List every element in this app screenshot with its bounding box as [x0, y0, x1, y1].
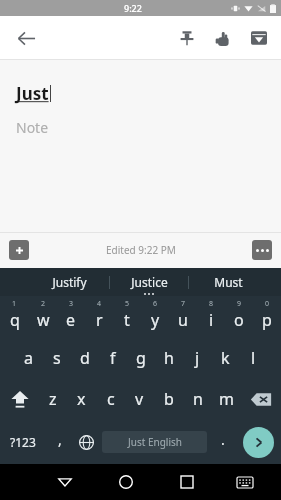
staticText: Just English — [128, 435, 182, 449]
staticText: , — [58, 430, 62, 449]
button[interactable]: Add — [9, 240, 29, 260]
staticText: 2 — [41, 299, 46, 309]
staticText: w — [37, 309, 50, 331]
staticText: g — [136, 347, 146, 369]
button[interactable]: Reminder — [205, 20, 241, 56]
staticText: . — [221, 430, 225, 449]
staticText: ?123 — [10, 434, 36, 450]
button[interactable]: ?123 — [0, 420, 46, 464]
staticText: j — [195, 347, 200, 369]
staticText: 7 — [181, 299, 186, 309]
button[interactable]: 0 — [253, 296, 281, 338]
button[interactable]: k — [211, 338, 239, 378]
staticText: y — [151, 309, 160, 331]
button[interactable]: 4 — [85, 296, 113, 338]
staticText: 6 — [153, 299, 158, 309]
staticText: 9 — [237, 299, 242, 309]
button[interactable]: Enter — [243, 427, 274, 458]
button[interactable]: 7 — [169, 296, 197, 338]
staticText: Justify — [52, 274, 87, 290]
button[interactable]: f — [99, 338, 127, 378]
button[interactable]: Pin — [169, 20, 205, 56]
staticText: 1 — [12, 299, 17, 309]
button[interactable]: v — [125, 378, 154, 420]
staticText: f — [110, 347, 116, 369]
button[interactable]: g — [127, 338, 155, 378]
staticText: a — [24, 347, 33, 369]
button[interactable]: Shift — [0, 378, 39, 420]
button[interactable]: n — [183, 378, 212, 420]
button[interactable]: j — [183, 338, 211, 378]
button[interactable]: Change language — [73, 420, 100, 464]
staticText: s — [53, 347, 61, 369]
button[interactable]: Recent apps — [156, 464, 217, 500]
button[interactable]: m — [212, 378, 241, 420]
staticText: x — [77, 388, 86, 410]
button[interactable]: 8 — [197, 296, 225, 338]
staticText: l — [251, 347, 256, 369]
staticText: d — [80, 347, 90, 369]
staticText: i — [209, 309, 214, 331]
button[interactable]: 6 — [141, 296, 169, 338]
button[interactable]: , — [46, 420, 73, 464]
staticText: r — [96, 309, 103, 331]
staticText: h — [164, 347, 174, 369]
staticText: Just — [16, 82, 49, 105]
staticText: n — [193, 388, 203, 410]
staticText: 3 — [69, 299, 74, 309]
staticText: k — [221, 347, 230, 369]
button[interactable]: Justify — [30, 268, 109, 296]
button[interactable]: b — [154, 378, 183, 420]
button[interactable]: 2 — [29, 296, 57, 338]
staticText: p — [262, 309, 272, 331]
button[interactable]: 3 — [57, 296, 85, 338]
staticText: 8 — [209, 299, 214, 309]
button[interactable]: Home — [95, 464, 156, 500]
button[interactable]: Back — [8, 20, 44, 56]
staticText: 5 — [125, 299, 130, 309]
button[interactable]: Just English — [102, 431, 207, 453]
button[interactable]: 5 — [113, 296, 141, 338]
staticText: u — [178, 309, 188, 331]
button[interactable]: Archive — [241, 20, 277, 56]
staticText: c — [107, 388, 115, 410]
button[interactable]: 1 — [0, 296, 29, 338]
button[interactable]: x — [67, 378, 96, 420]
button[interactable]: d — [71, 338, 99, 378]
staticText: b — [164, 388, 174, 410]
button[interactable]: Switch keyboard — [217, 464, 272, 500]
button[interactable]: z — [39, 378, 67, 420]
button[interactable]: l — [239, 338, 267, 378]
button[interactable]: c — [96, 378, 125, 420]
button[interactable]: Back — [34, 464, 95, 500]
staticText: 0 — [265, 299, 270, 309]
staticText: Note — [16, 118, 49, 137]
button[interactable]: Backspace — [241, 378, 281, 420]
staticText: t — [124, 309, 130, 331]
button[interactable]: a — [14, 338, 43, 378]
staticText: 4 — [97, 299, 102, 309]
staticText: 9:22 — [124, 2, 142, 14]
staticText: q — [10, 309, 20, 331]
staticText: v — [135, 388, 144, 410]
staticText: z — [49, 388, 57, 410]
staticText: m — [219, 388, 234, 410]
button[interactable]: Justice — [110, 268, 188, 296]
staticText: Justice — [131, 274, 168, 290]
staticText: e — [66, 309, 76, 331]
button[interactable]: Must — [189, 268, 267, 296]
button[interactable]: More options — [252, 240, 272, 260]
staticText: Must — [214, 274, 243, 290]
button[interactable]: 9 — [225, 296, 253, 338]
button[interactable]: s — [43, 338, 71, 378]
staticText: Edited 9:22 PM — [106, 243, 176, 257]
button[interactable]: h — [155, 338, 183, 378]
staticText: o — [234, 309, 244, 331]
button[interactable]: . — [209, 420, 236, 464]
